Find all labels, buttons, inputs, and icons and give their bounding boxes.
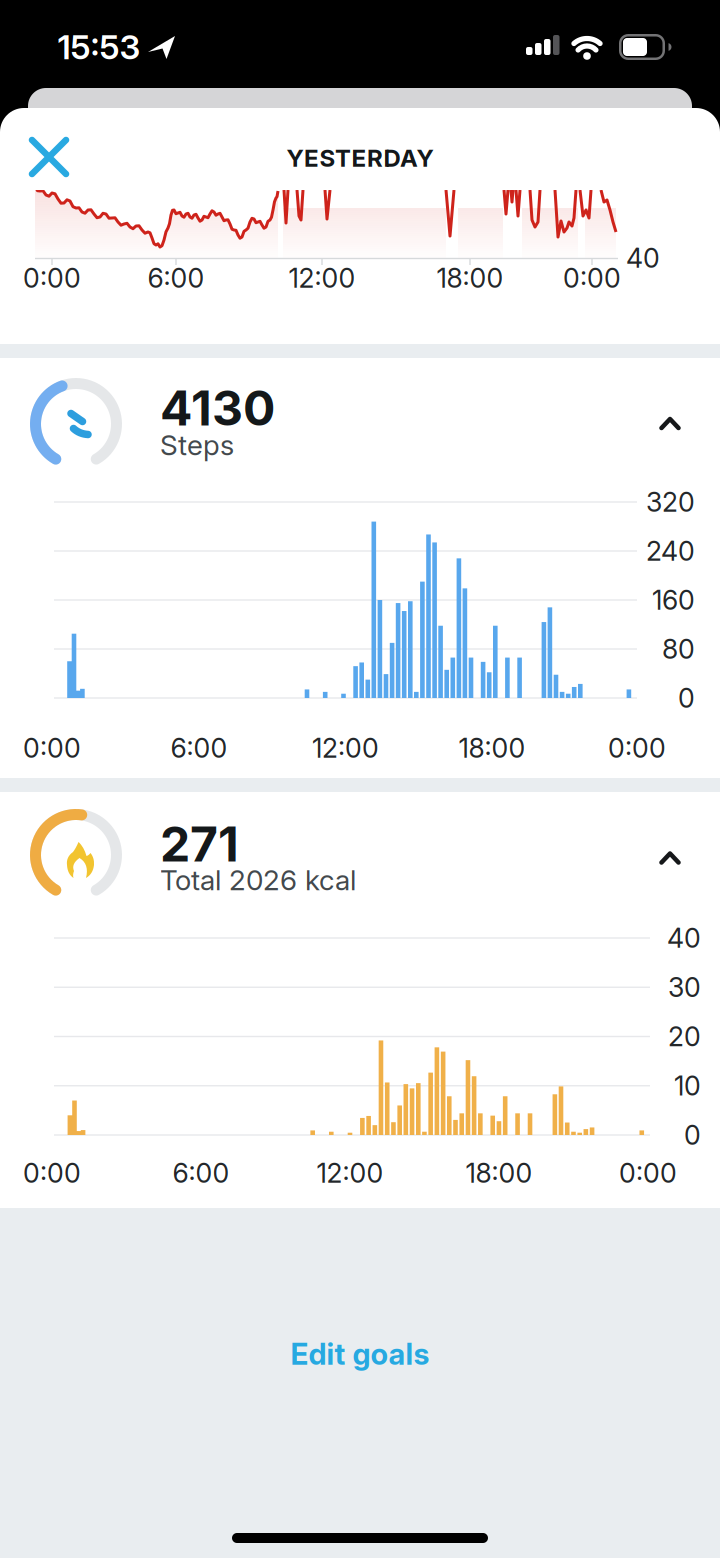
staticText: 30 (668, 971, 701, 1003)
staticText: 6:00 (147, 262, 204, 294)
staticText: 0:00 (619, 1157, 677, 1189)
staticText: 12:00 (288, 262, 355, 294)
staticText: 4130 (160, 380, 275, 436)
staticText: 6:00 (172, 1157, 229, 1189)
staticText: 240 (646, 535, 695, 567)
staticText: 80 (662, 633, 695, 665)
staticText: 0:00 (23, 732, 81, 764)
staticText: 0:00 (23, 262, 81, 294)
staticText: 0 (684, 1119, 701, 1151)
staticText: Steps (160, 428, 234, 461)
staticText: 160 (652, 584, 695, 616)
staticText: Edit goals (290, 1337, 429, 1371)
staticText: 40 (626, 242, 660, 274)
staticText: 0:00 (563, 262, 621, 294)
staticText: 40 (667, 922, 701, 954)
staticText: 18:00 (458, 732, 525, 764)
staticText: 18:00 (436, 262, 503, 294)
staticText: 15:53 (57, 27, 140, 67)
staticText: 10 (674, 1070, 701, 1101)
staticText: 12:00 (312, 732, 379, 764)
staticText: YESTERDAY (286, 144, 433, 172)
staticText: 271 (160, 816, 239, 872)
staticText: 0:00 (23, 1157, 81, 1189)
staticText: 6:00 (170, 732, 227, 764)
staticText: 0:00 (608, 732, 666, 764)
staticText: 320 (646, 486, 695, 518)
staticText: Total 2026 kcal (160, 863, 356, 896)
staticText: 0 (678, 682, 695, 714)
staticText: 20 (668, 1021, 701, 1052)
staticText: 18:00 (465, 1157, 532, 1189)
staticText: 12:00 (316, 1157, 383, 1189)
